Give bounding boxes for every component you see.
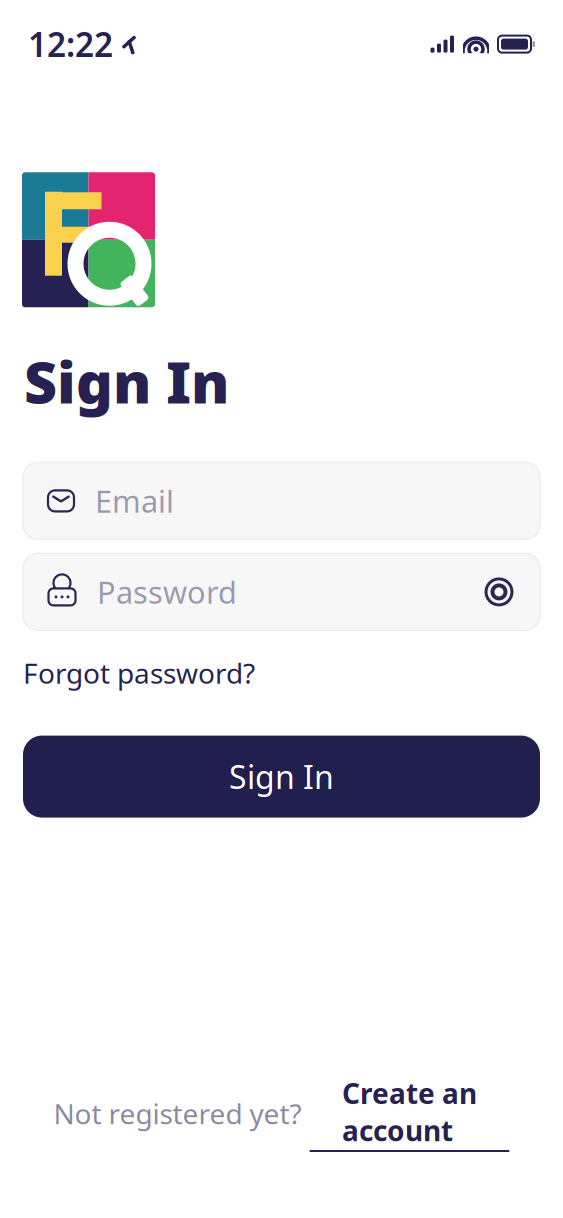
staticText: Sign In — [229, 755, 334, 798]
button[interactable]: Create an account — [309, 1075, 509, 1152]
staticText: 12:22 — [28, 22, 113, 66]
staticText: Create an account — [342, 1075, 477, 1149]
staticText: Forgot password? — [23, 654, 255, 692]
button[interactable]: Email — [0, 462, 563, 539]
staticText: Not registered yet? — [53, 1095, 301, 1132]
staticText: Password — [97, 571, 237, 612]
button[interactable]: Sign In — [0, 736, 563, 818]
staticText: Email — [95, 480, 174, 521]
button[interactable]: Forgot password? — [0, 652, 255, 694]
button[interactable]: Show password — [482, 575, 516, 609]
staticText: Sign In — [24, 343, 229, 419]
button[interactable]: Password — [0, 553, 563, 630]
